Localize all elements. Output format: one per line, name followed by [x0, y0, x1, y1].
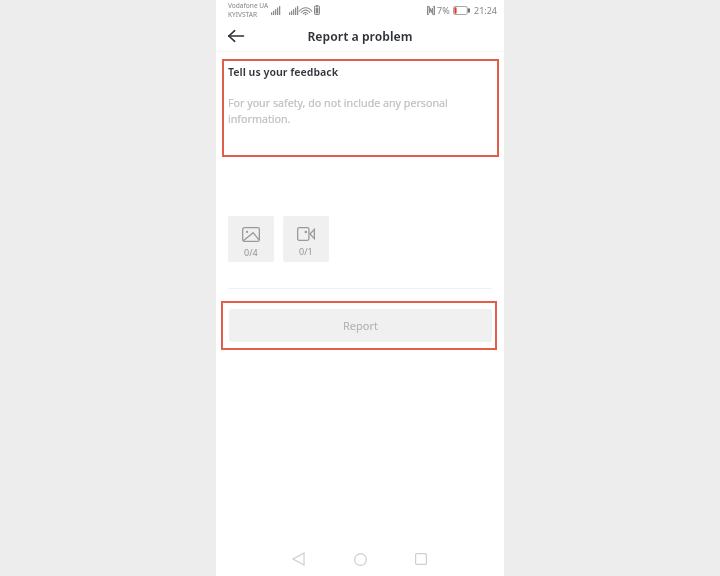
button[interactable]: Add photo — [228, 216, 274, 262]
staticText: 0/1 — [299, 245, 313, 257]
button[interactable]: Report — [229, 309, 492, 342]
staticText: 0/4 — [244, 246, 258, 258]
button[interactable]: Recents — [409, 547, 433, 571]
staticText: Tell us your feedback — [228, 65, 339, 79]
staticText: KYIVSTAR — [228, 10, 258, 19]
staticText: 7% — [437, 4, 450, 16]
button[interactable]: Tell us your feedback — [224, 61, 497, 155]
staticText: 21:24 — [474, 4, 498, 16]
button[interactable]: Add video — [283, 216, 329, 262]
button[interactable]: Home — [348, 547, 372, 571]
staticText: Vodafone UA — [228, 1, 269, 10]
staticText: For your safety, do not include any pers… — [228, 96, 489, 126]
button[interactable]: Back — [287, 547, 311, 571]
staticText: Report a problem — [307, 28, 413, 44]
button[interactable]: Back — [222, 22, 250, 50]
staticText: Report — [343, 318, 378, 333]
